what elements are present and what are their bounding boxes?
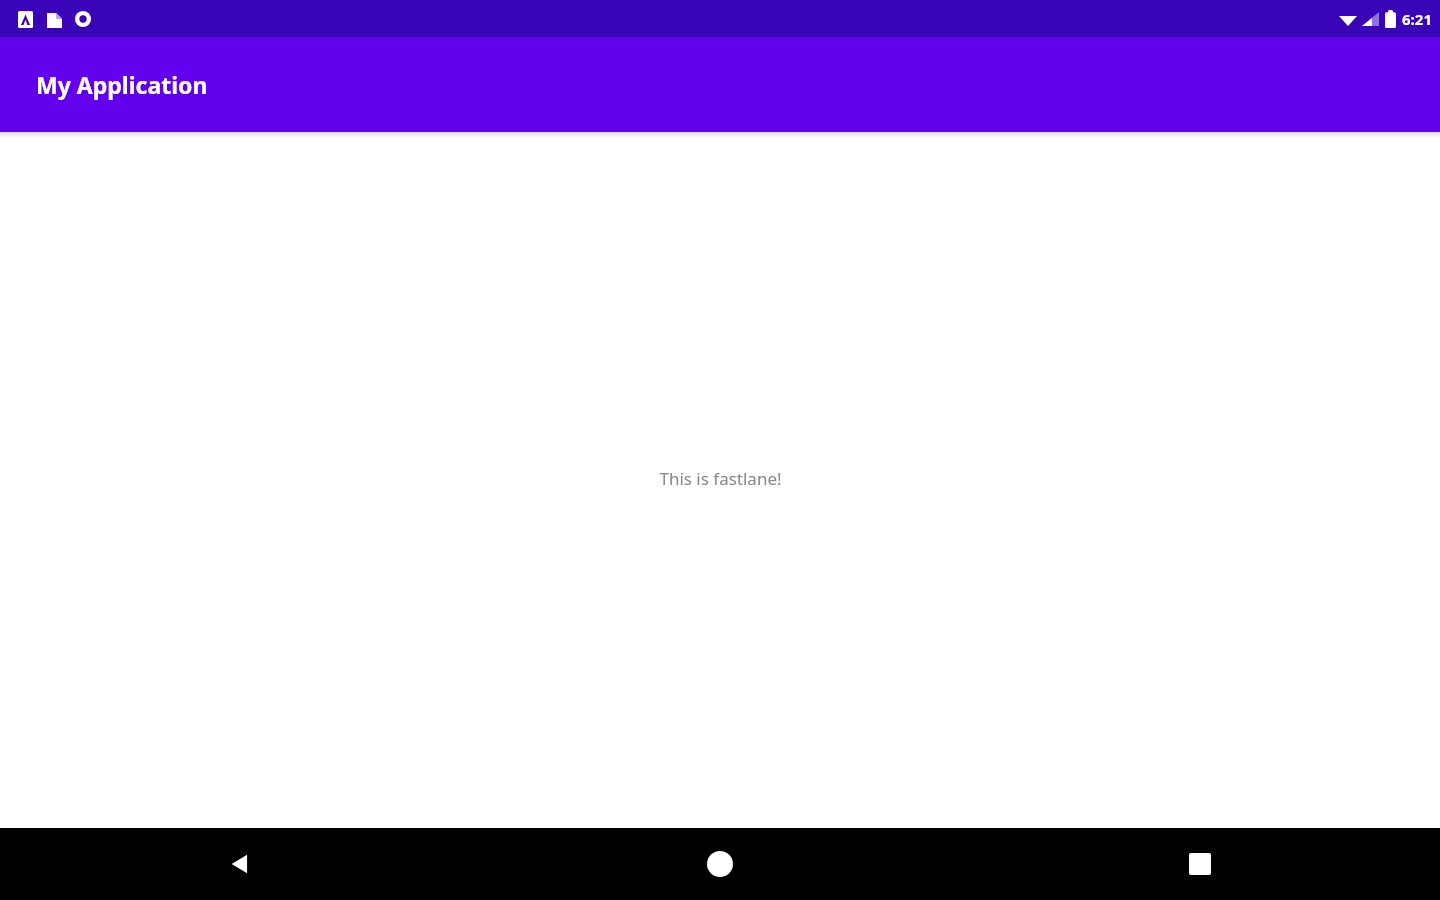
button[interactable]: Recent apps bbox=[960, 828, 1440, 900]
button[interactable]: Back bbox=[0, 828, 480, 900]
staticText: This is fastlane! bbox=[659, 467, 782, 490]
button[interactable]: Home bbox=[480, 828, 960, 900]
staticText: 6:21 bbox=[1402, 9, 1432, 29]
staticText: My Application bbox=[36, 69, 208, 100]
